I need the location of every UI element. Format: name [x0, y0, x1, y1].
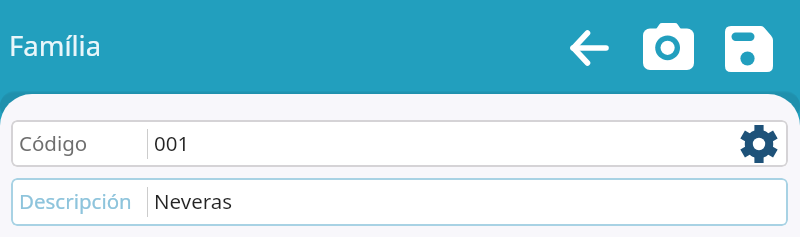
staticText: Código — [19, 129, 88, 157]
button[interactable]: Código — [11, 120, 788, 167]
staticText: Família — [9, 27, 102, 64]
staticText: 001 — [154, 129, 190, 157]
button[interactable]: Descripción — [11, 178, 788, 226]
staticText: Neveras — [154, 187, 233, 215]
button[interactable]: Save — [725, 26, 773, 72]
staticText: Descripción — [19, 187, 132, 215]
button[interactable]: Take photo — [643, 23, 694, 70]
button[interactable]: Settings — [739, 124, 779, 164]
button[interactable]: Back — [564, 24, 612, 72]
